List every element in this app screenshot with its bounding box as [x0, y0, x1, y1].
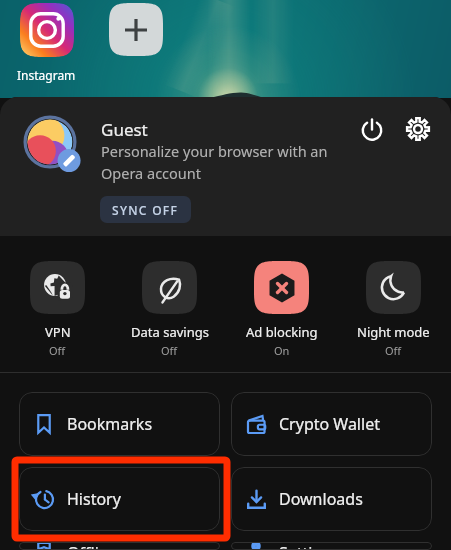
button[interactable]: VPN [2, 261, 113, 358]
staticText: Data savings [131, 323, 209, 341]
button[interactable]: SYNC OFF [100, 196, 191, 223]
staticText: Off [385, 343, 402, 358]
staticText: History [67, 488, 121, 510]
staticText: VPN [45, 323, 71, 341]
button[interactable]: Downloads [231, 467, 432, 531]
button[interactable]: Settings [398, 109, 438, 149]
staticText: Crypto Wallet [279, 413, 380, 435]
staticText: Off [161, 343, 178, 358]
staticText: Offline pages [67, 542, 168, 550]
staticText: Ad blocking [246, 323, 318, 341]
button[interactable]: Offline pages [19, 542, 220, 550]
button[interactable]: Instagram [20, 3, 74, 57]
staticText: Bookmarks [67, 413, 153, 435]
staticText: Personalize your browser with an Opera a… [101, 141, 353, 183]
button[interactable]: Exit [352, 109, 392, 149]
button[interactable]: Add [109, 3, 163, 56]
staticText: Off [49, 343, 66, 358]
staticText: Night mode [357, 323, 430, 341]
button[interactable]: Bookmarks [19, 392, 220, 456]
staticText: SYNC OFF [112, 202, 179, 218]
button[interactable]: Data savings [114, 261, 225, 358]
button[interactable]: Night mode [338, 261, 449, 358]
button[interactable]: Ad blocking [226, 261, 337, 358]
button[interactable]: Settings [231, 542, 432, 550]
button[interactable]: Crypto Wallet [231, 392, 432, 456]
staticText: On [274, 343, 290, 358]
staticText: Downloads [279, 488, 363, 510]
button[interactable]: History [19, 467, 220, 531]
staticText: Settings [279, 542, 340, 550]
staticText: Instagram [17, 67, 76, 83]
staticText: Guest [101, 118, 148, 141]
